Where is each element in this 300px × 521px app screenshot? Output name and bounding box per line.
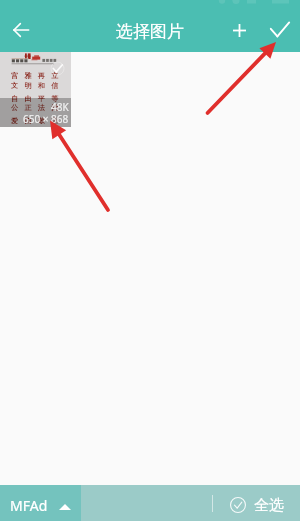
staticText: 自由平等 <box>11 94 65 103</box>
staticText: 选择图片 <box>116 21 184 42</box>
staticText: 爱国敬业 <box>11 116 65 125</box>
button[interactable]: 全选 <box>213 494 300 513</box>
button[interactable]: Confirm <box>258 8 300 52</box>
button[interactable]: MFAd <box>0 485 81 521</box>
staticText: 全选 <box>254 496 284 515</box>
staticText: 宫雅再立 <box>11 71 65 80</box>
button[interactable]: Back <box>1 10 41 50</box>
staticText: 文明和信 <box>11 81 65 90</box>
staticText: 650 × 868 <box>23 112 69 126</box>
button[interactable]: 宫雅再立 <box>0 52 71 127</box>
staticText: 48K <box>51 100 69 114</box>
staticText: MFAd <box>10 496 48 515</box>
button[interactable]: Add <box>220 11 258 49</box>
staticText: 公正法治 <box>11 103 65 112</box>
